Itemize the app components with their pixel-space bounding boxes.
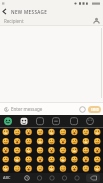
button[interactable] <box>36 137 48 146</box>
button[interactable] <box>24 146 36 155</box>
button[interactable] <box>92 155 103 164</box>
button[interactable] <box>12 127 24 137</box>
button[interactable] <box>4 107 9 112</box>
button[interactable] <box>28 173 43 183</box>
button[interactable] <box>59 164 70 173</box>
button[interactable] <box>12 164 24 173</box>
button[interactable] <box>79 106 86 113</box>
staticText: Enter message <box>11 106 43 112</box>
button[interactable] <box>59 137 70 146</box>
button[interactable] <box>70 127 81 137</box>
button[interactable] <box>48 146 59 155</box>
button[interactable] <box>81 164 92 173</box>
button[interactable] <box>0 7 9 16</box>
button[interactable] <box>92 16 101 25</box>
staticText: ABC <box>3 175 11 180</box>
button[interactable] <box>14 173 28 183</box>
button[interactable] <box>0 164 12 173</box>
button[interactable] <box>36 164 48 173</box>
button[interactable] <box>92 137 103 146</box>
button[interactable] <box>81 137 92 146</box>
button[interactable] <box>0 146 12 155</box>
button[interactable] <box>0 127 12 137</box>
staticText: Recipient <box>4 18 24 24</box>
button[interactable] <box>81 155 92 164</box>
button[interactable] <box>48 155 59 164</box>
button[interactable] <box>59 155 70 164</box>
button[interactable] <box>36 155 48 164</box>
button[interactable] <box>70 137 81 146</box>
staticText: NEW MESSAGE <box>11 9 48 15</box>
button[interactable] <box>0 137 12 146</box>
button[interactable] <box>35 115 52 127</box>
button[interactable] <box>70 146 81 155</box>
button[interactable] <box>48 164 59 173</box>
button[interactable] <box>81 146 92 155</box>
button[interactable] <box>48 127 59 137</box>
button[interactable] <box>69 115 86 127</box>
button[interactable] <box>88 173 103 183</box>
button[interactable] <box>24 127 36 137</box>
button[interactable] <box>0 115 18 127</box>
button[interactable] <box>12 137 24 146</box>
button[interactable] <box>59 146 70 155</box>
button[interactable] <box>92 146 103 155</box>
button[interactable] <box>12 146 24 155</box>
staticText: SEND <box>91 108 99 112</box>
button[interactable] <box>92 127 103 137</box>
button[interactable] <box>12 155 24 164</box>
button[interactable]: Recipient <box>0 16 103 25</box>
button[interactable] <box>70 164 81 173</box>
button[interactable] <box>70 155 81 164</box>
button[interactable] <box>58 173 73 183</box>
button[interactable]: Enter message <box>11 103 79 115</box>
button[interactable] <box>86 115 103 127</box>
button[interactable] <box>59 127 70 137</box>
button[interactable] <box>73 173 88 183</box>
button[interactable] <box>48 137 59 146</box>
button[interactable] <box>24 155 36 164</box>
button[interactable] <box>43 173 58 183</box>
button[interactable] <box>52 115 69 127</box>
button[interactable] <box>0 155 12 164</box>
button[interactable] <box>81 127 92 137</box>
button[interactable]: SEND <box>88 106 101 113</box>
button[interactable] <box>36 127 48 137</box>
button[interactable] <box>24 137 36 146</box>
button[interactable] <box>92 164 103 173</box>
button[interactable] <box>18 115 35 127</box>
button[interactable] <box>36 146 48 155</box>
button[interactable] <box>24 164 36 173</box>
button[interactable] <box>0 173 14 183</box>
